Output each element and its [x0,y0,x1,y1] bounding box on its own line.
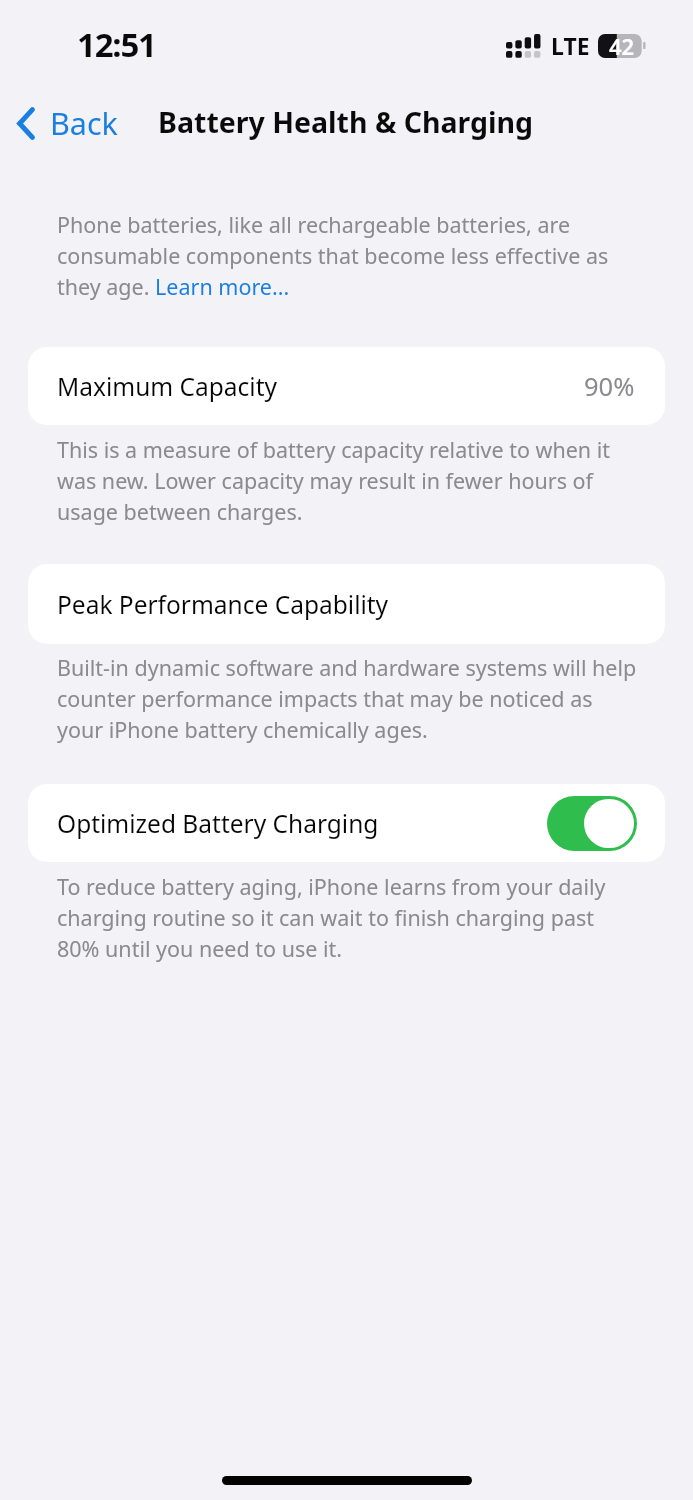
staticText: 12:51 [77,22,156,67]
button[interactable]: Learn more [155,272,290,305]
staticText: Maximum Capacity [57,370,278,403]
staticText: Back [50,102,118,144]
staticText: This is a measure of battery capacity re… [57,434,637,527]
staticText: Peak Performance Capability [57,588,389,621]
staticText: To reduce battery aging, iPhone learns f… [57,871,637,964]
button[interactable]: Peak Performance Capability [28,564,665,644]
staticText: Battery Health & Charging [158,103,534,142]
button[interactable]: Back [8,96,127,150]
other: Battery 42 percent [598,34,645,58]
button[interactable]: Optimized Battery Charging [28,784,665,862]
staticText: 90% [584,369,635,404]
staticText: LTE [551,30,590,61]
button[interactable]: Optimized Battery Charging toggle [547,796,637,851]
button[interactable]: Maximum Capacity [28,347,665,425]
staticText: Optimized Battery Charging [57,807,379,840]
staticText: Phone batteries, like all rechargeable b… [57,209,637,302]
staticText: Built-in dynamic software and hardware s… [57,652,637,745]
staticText: 42 [609,31,635,55]
